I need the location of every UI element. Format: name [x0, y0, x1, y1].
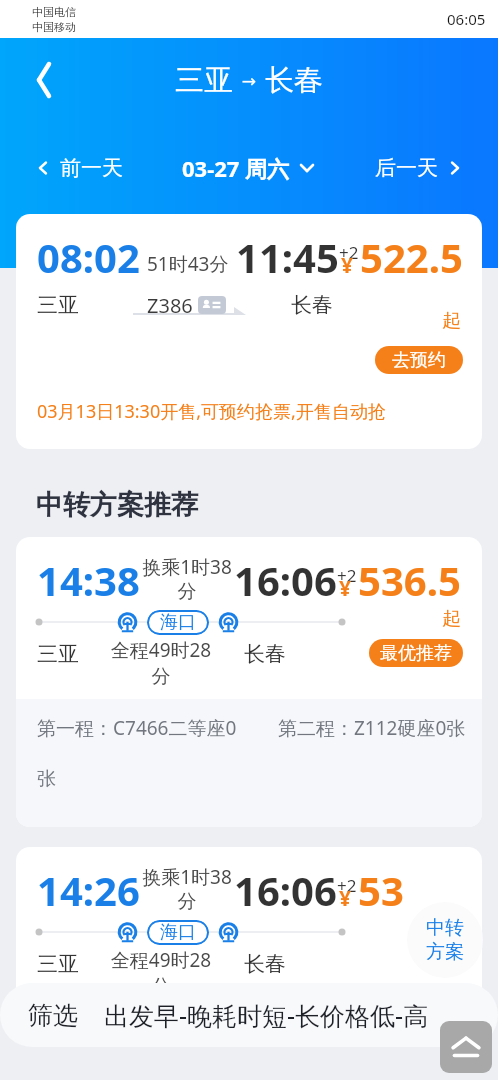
staticText: 中转 [426, 916, 464, 940]
staticText: 三亚 [175, 62, 233, 99]
staticText: 长春 [291, 292, 333, 318]
staticText: Z386 [147, 292, 193, 318]
staticText: 起 [442, 917, 461, 941]
staticText: 后一天 [375, 155, 438, 181]
button[interactable]: 起 [16, 847, 482, 1026]
staticText: → [233, 69, 265, 92]
button[interactable]: 筛选 [28, 1000, 78, 1031]
staticText: +2 [337, 874, 357, 897]
staticText: 16:06 [234, 863, 337, 917]
staticText: 中转方案推荐 [36, 488, 198, 522]
staticText: 03月13日13:30开售,可预约抢票,开售自动抢 [37, 399, 386, 424]
staticText: 海口 [160, 921, 196, 944]
staticText: 去预约 [392, 349, 446, 372]
button[interactable]: 最优推荐 [369, 639, 463, 667]
staticText: 全程49时28分 [107, 947, 215, 999]
staticText: 三亚 [37, 292, 79, 318]
staticText: 第二程：Z112硬座0张 [278, 715, 466, 741]
staticText: 14:38 [37, 553, 140, 607]
staticText: 中国电信 [32, 5, 76, 19]
staticText: 08:02 [37, 230, 140, 284]
staticText: 长春 [244, 641, 286, 667]
button[interactable]: 去预约 [375, 346, 463, 374]
staticText: 方案 [426, 940, 464, 964]
staticText: ¥ [341, 251, 354, 280]
staticText: 11:45 [236, 230, 339, 284]
staticText: 16:06 [234, 553, 337, 607]
button[interactable]: 出发早-晚耗时短-长价格低-高 [104, 998, 429, 1032]
staticText: 长春 [265, 62, 323, 99]
button[interactable]: 前一天 [0, 141, 158, 195]
staticText: 换乘1时38分 [142, 864, 232, 914]
staticText: 前一天 [60, 155, 123, 181]
button[interactable]: 中转 [407, 902, 483, 978]
staticText: 全程49时28分 [107, 637, 215, 689]
staticText: +2 [337, 564, 357, 587]
staticText: ¥ [339, 884, 352, 913]
staticText: 14:26 [37, 863, 140, 917]
staticText: 换乘1时38分 [142, 554, 232, 604]
staticText: 51时43分 [147, 251, 229, 277]
button[interactable]: 起 [16, 214, 482, 449]
button[interactable]: Scroll to top [440, 1021, 492, 1073]
staticText: 海口 [160, 611, 196, 634]
staticText: 起 [442, 607, 461, 631]
button[interactable]: Back [24, 60, 64, 100]
staticText: 中国移动 [32, 20, 76, 34]
staticText: 长春 [244, 951, 286, 977]
staticText: 三亚 [37, 641, 79, 667]
staticText: 536.5 [358, 553, 461, 607]
staticText: 03-27 周六 [182, 153, 290, 183]
button[interactable]: 起 [16, 537, 482, 827]
staticText: 06:05 [447, 9, 486, 29]
staticText: 53 [358, 863, 404, 917]
button[interactable]: 后一天 [340, 141, 498, 195]
staticText: 三亚 [37, 951, 79, 977]
staticText: +2 [339, 241, 359, 264]
staticText: 第一程：C7466二等座0张 [37, 715, 237, 791]
staticText: 起 [442, 309, 461, 333]
staticText: ¥ [339, 574, 352, 603]
button[interactable]: 03-27 周六 [158, 141, 340, 195]
staticText: 522.5 [360, 230, 463, 284]
staticText: 最优推荐 [380, 642, 452, 665]
